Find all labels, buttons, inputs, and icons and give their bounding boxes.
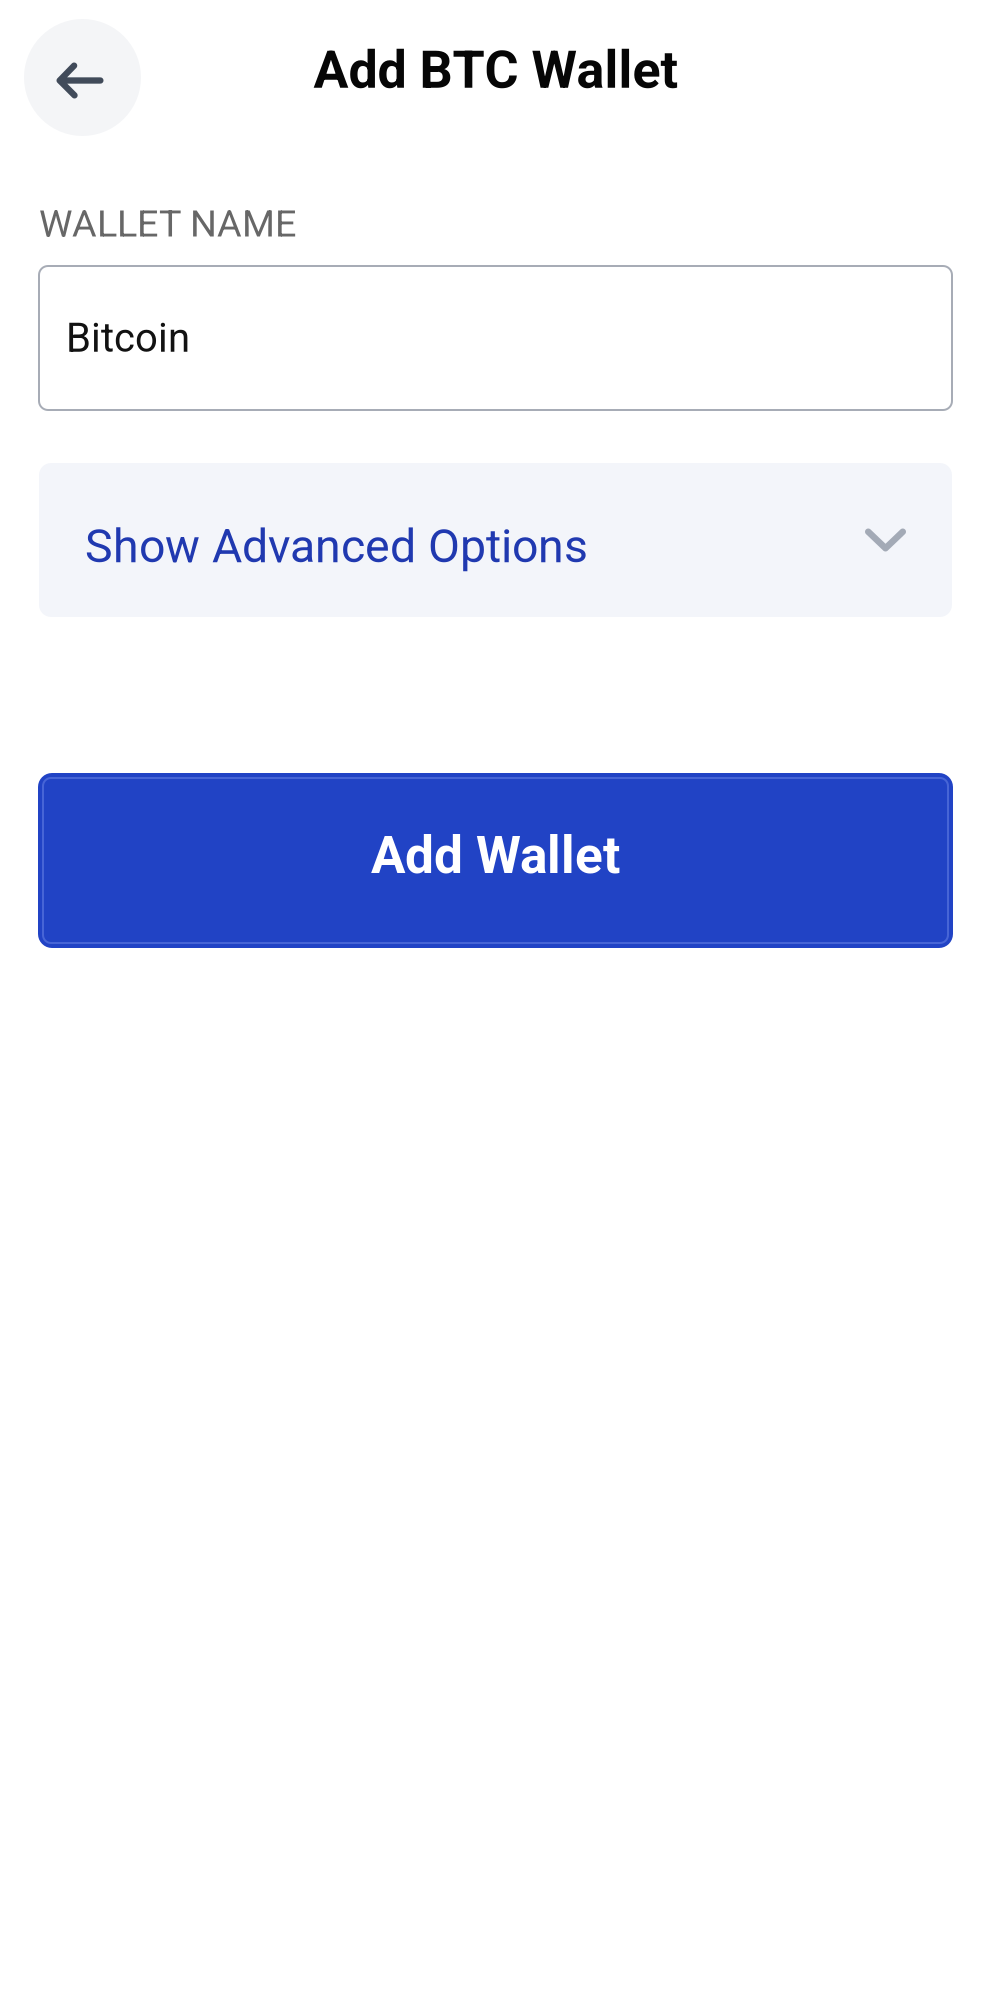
button[interactable]: Add Wallet [38, 773, 953, 948]
button[interactable]: Show Advanced Options [39, 463, 952, 617]
staticText: WALLET NAME [39, 201, 296, 246]
button[interactable]: Back [24, 19, 141, 136]
staticText: Add BTC Wallet [313, 39, 678, 100]
staticText: Bitcoin [66, 315, 190, 361]
staticText: Show Advanced Options [85, 519, 588, 574]
staticText: Add Wallet [371, 825, 620, 886]
